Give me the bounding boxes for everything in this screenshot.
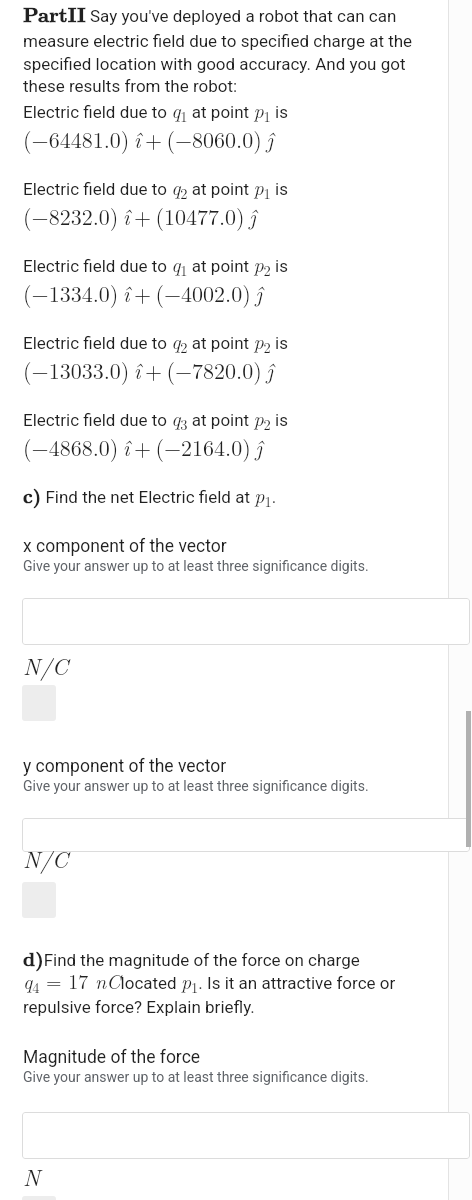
staticText: N/C xyxy=(23,649,69,682)
staticText: measure electric field due to specified … xyxy=(23,31,413,51)
staticText: N/C xyxy=(23,842,69,875)
staticText: x component of the vector xyxy=(23,536,227,557)
staticText: repulsive force? Explain briefly. xyxy=(23,997,255,1017)
staticText: (−13033.0) î + (−7820.0) ĵ xyxy=(23,354,273,385)
staticText: (−8232.0) î + (10477.0) ĵ xyxy=(23,200,256,231)
staticText: y component of the vector xyxy=(23,756,227,777)
staticText: Electric field due to q3 at point p2 is xyxy=(23,403,288,434)
staticText: these results from the robot: xyxy=(23,76,238,96)
staticText: c) Find the net Electric field at p1. xyxy=(23,480,277,511)
staticText: Give your answer up to at least three si… xyxy=(23,1069,369,1085)
staticText: Give your answer up to at least three si… xyxy=(23,558,369,574)
staticText: N xyxy=(23,1160,41,1193)
staticText: d)Find the magnitude of the force on cha… xyxy=(23,944,360,971)
button[interactable] xyxy=(22,598,470,645)
staticText: Electric field due to q2 at point p1 is xyxy=(23,172,288,203)
staticText: specified location with good accuracy. A… xyxy=(23,54,406,74)
staticText: Give your answer up to at least three si… xyxy=(23,778,369,794)
staticText: Electric field due to q2 at point p2 is xyxy=(23,326,288,357)
staticText: Electric field due to q1 at point p1 is xyxy=(23,95,288,126)
button[interactable] xyxy=(22,1112,470,1159)
staticText: (−64481.0) î + (−8060.0) ĵ xyxy=(23,123,273,154)
staticText: q4 = 17 nClocated p1. Is it an attractiv… xyxy=(23,966,396,997)
staticText: Magnitude of the force xyxy=(23,1047,201,1068)
staticText: (−4868.0) î + (−2164.0) ĵ xyxy=(23,431,262,462)
staticText: (−1334.0) î + (−4002.0) ĵ xyxy=(23,277,262,308)
button[interactable] xyxy=(22,818,470,852)
staticText: Electric field due to q1 at point p2 is xyxy=(23,249,288,280)
staticText: PartII Say you've deployed a robot that … xyxy=(23,0,397,28)
